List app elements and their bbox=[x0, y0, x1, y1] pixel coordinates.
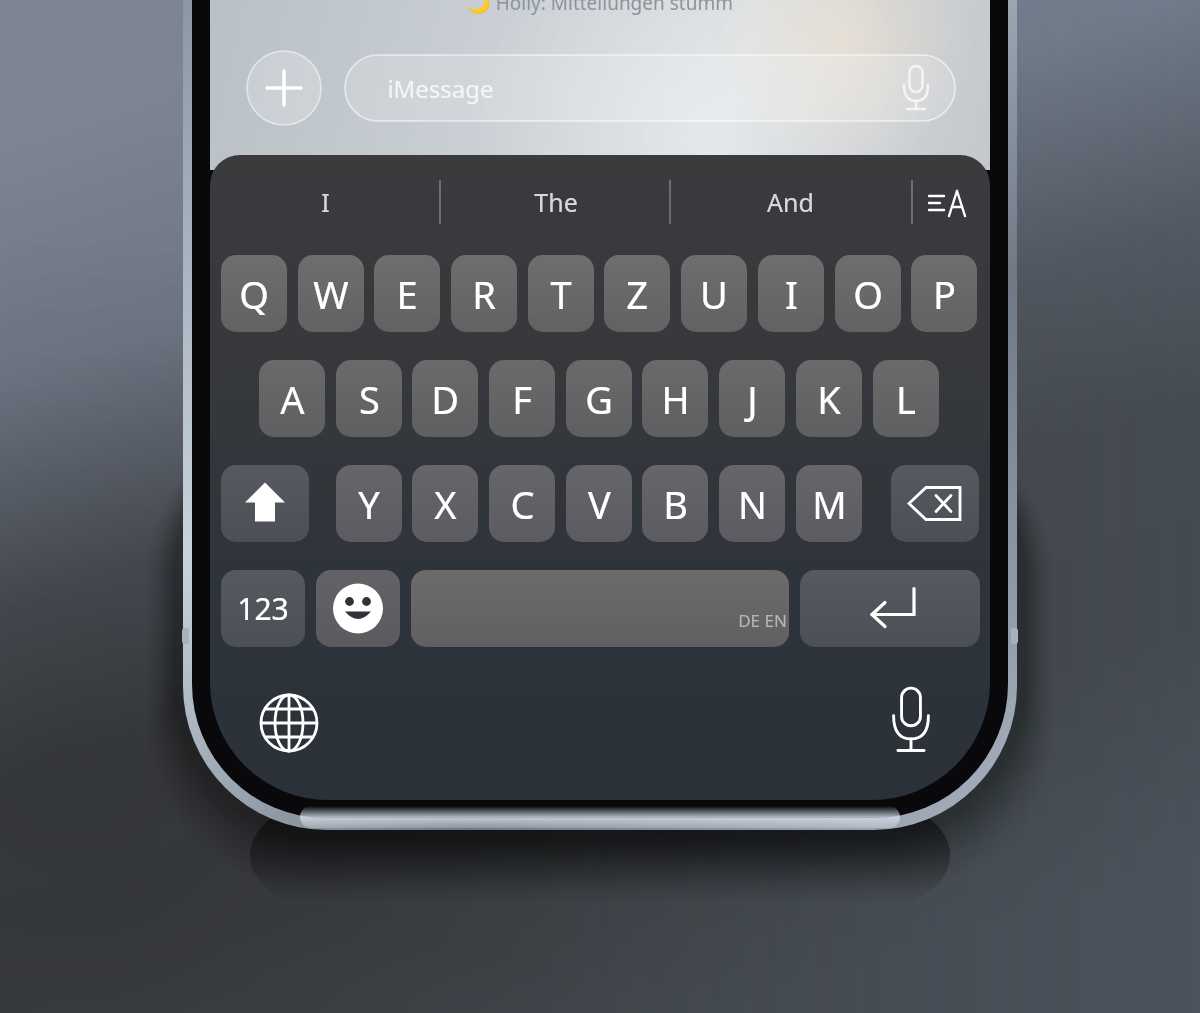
button[interactable]: J bbox=[719, 360, 785, 437]
button[interactable]: E bbox=[374, 255, 440, 332]
button[interactable]: K bbox=[796, 360, 862, 437]
button[interactable]: D bbox=[412, 360, 478, 437]
button[interactable]: Add attachment bbox=[247, 51, 321, 125]
button[interactable]: Space bbox=[411, 570, 789, 647]
button[interactable]: W bbox=[298, 255, 364, 332]
button[interactable]: B bbox=[642, 465, 708, 542]
staticText: U bbox=[700, 268, 728, 320]
staticText: F bbox=[512, 373, 532, 425]
button[interactable]: R bbox=[451, 255, 517, 332]
staticText: I bbox=[321, 185, 330, 219]
staticText: Z bbox=[626, 268, 648, 320]
staticText: 123 bbox=[237, 588, 289, 629]
button[interactable]: P bbox=[911, 255, 977, 332]
button[interactable]: Q bbox=[221, 255, 287, 332]
staticText: L bbox=[896, 373, 916, 425]
staticText: V bbox=[588, 478, 611, 530]
button[interactable]: N bbox=[719, 465, 785, 542]
button[interactable]: Z bbox=[604, 255, 670, 332]
staticText: W bbox=[313, 268, 349, 320]
staticText: iMessage bbox=[387, 72, 494, 105]
button[interactable]: The bbox=[446, 178, 666, 226]
button[interactable]: O bbox=[835, 255, 901, 332]
button[interactable]: Return bbox=[800, 570, 980, 647]
button[interactable]: And bbox=[675, 178, 905, 226]
staticText: Q bbox=[239, 268, 269, 320]
button[interactable]: I bbox=[220, 178, 430, 226]
staticText: D bbox=[431, 373, 459, 425]
button[interactable]: V bbox=[566, 465, 632, 542]
staticText: C bbox=[510, 478, 535, 530]
staticText: O bbox=[853, 268, 883, 320]
button[interactable]: Switch keyboard language bbox=[255, 688, 325, 758]
button[interactable]: A bbox=[259, 360, 325, 437]
staticText: N bbox=[738, 478, 767, 530]
button[interactable]: C bbox=[489, 465, 555, 542]
button[interactable]: Text formatting bbox=[915, 180, 981, 228]
button[interactable]: L bbox=[873, 360, 939, 437]
staticText: J bbox=[747, 373, 758, 425]
staticText: E bbox=[396, 268, 418, 320]
staticText: M bbox=[812, 478, 847, 530]
button[interactable]: X bbox=[412, 465, 478, 542]
staticText: Y bbox=[358, 478, 380, 530]
staticText: DE EN bbox=[738, 609, 787, 632]
staticText: B bbox=[663, 478, 688, 530]
button[interactable]: M bbox=[796, 465, 862, 542]
staticText: 🌙 Holly: Mitteilungen stumm bbox=[467, 0, 733, 16]
staticText: The bbox=[534, 185, 578, 219]
staticText: K bbox=[817, 373, 841, 425]
staticText: T bbox=[550, 268, 572, 320]
button[interactable]: Shift bbox=[221, 465, 309, 542]
button[interactable]: 123 bbox=[221, 570, 305, 647]
button[interactable]: Y bbox=[336, 465, 402, 542]
button[interactable]: Emoji keyboard bbox=[316, 570, 400, 647]
button[interactable]: F bbox=[489, 360, 555, 437]
staticText: X bbox=[434, 478, 457, 530]
staticText: And bbox=[767, 185, 814, 219]
staticText: I bbox=[785, 268, 798, 320]
button[interactable]: Message input field bbox=[345, 55, 955, 121]
button[interactable]: I bbox=[758, 255, 824, 332]
staticText: P bbox=[933, 268, 956, 320]
button[interactable]: T bbox=[528, 255, 594, 332]
staticText: H bbox=[661, 373, 690, 425]
button[interactable]: Dictate bbox=[885, 55, 955, 121]
staticText: R bbox=[472, 268, 496, 320]
button[interactable]: U bbox=[681, 255, 747, 332]
staticText: A bbox=[280, 373, 305, 425]
button[interactable]: Backspace bbox=[891, 465, 979, 542]
button[interactable]: H bbox=[642, 360, 708, 437]
staticText: S bbox=[359, 373, 380, 425]
button[interactable]: S bbox=[336, 360, 402, 437]
staticText: G bbox=[585, 373, 613, 425]
button[interactable]: Voice input bbox=[876, 685, 946, 755]
button[interactable]: G bbox=[566, 360, 632, 437]
